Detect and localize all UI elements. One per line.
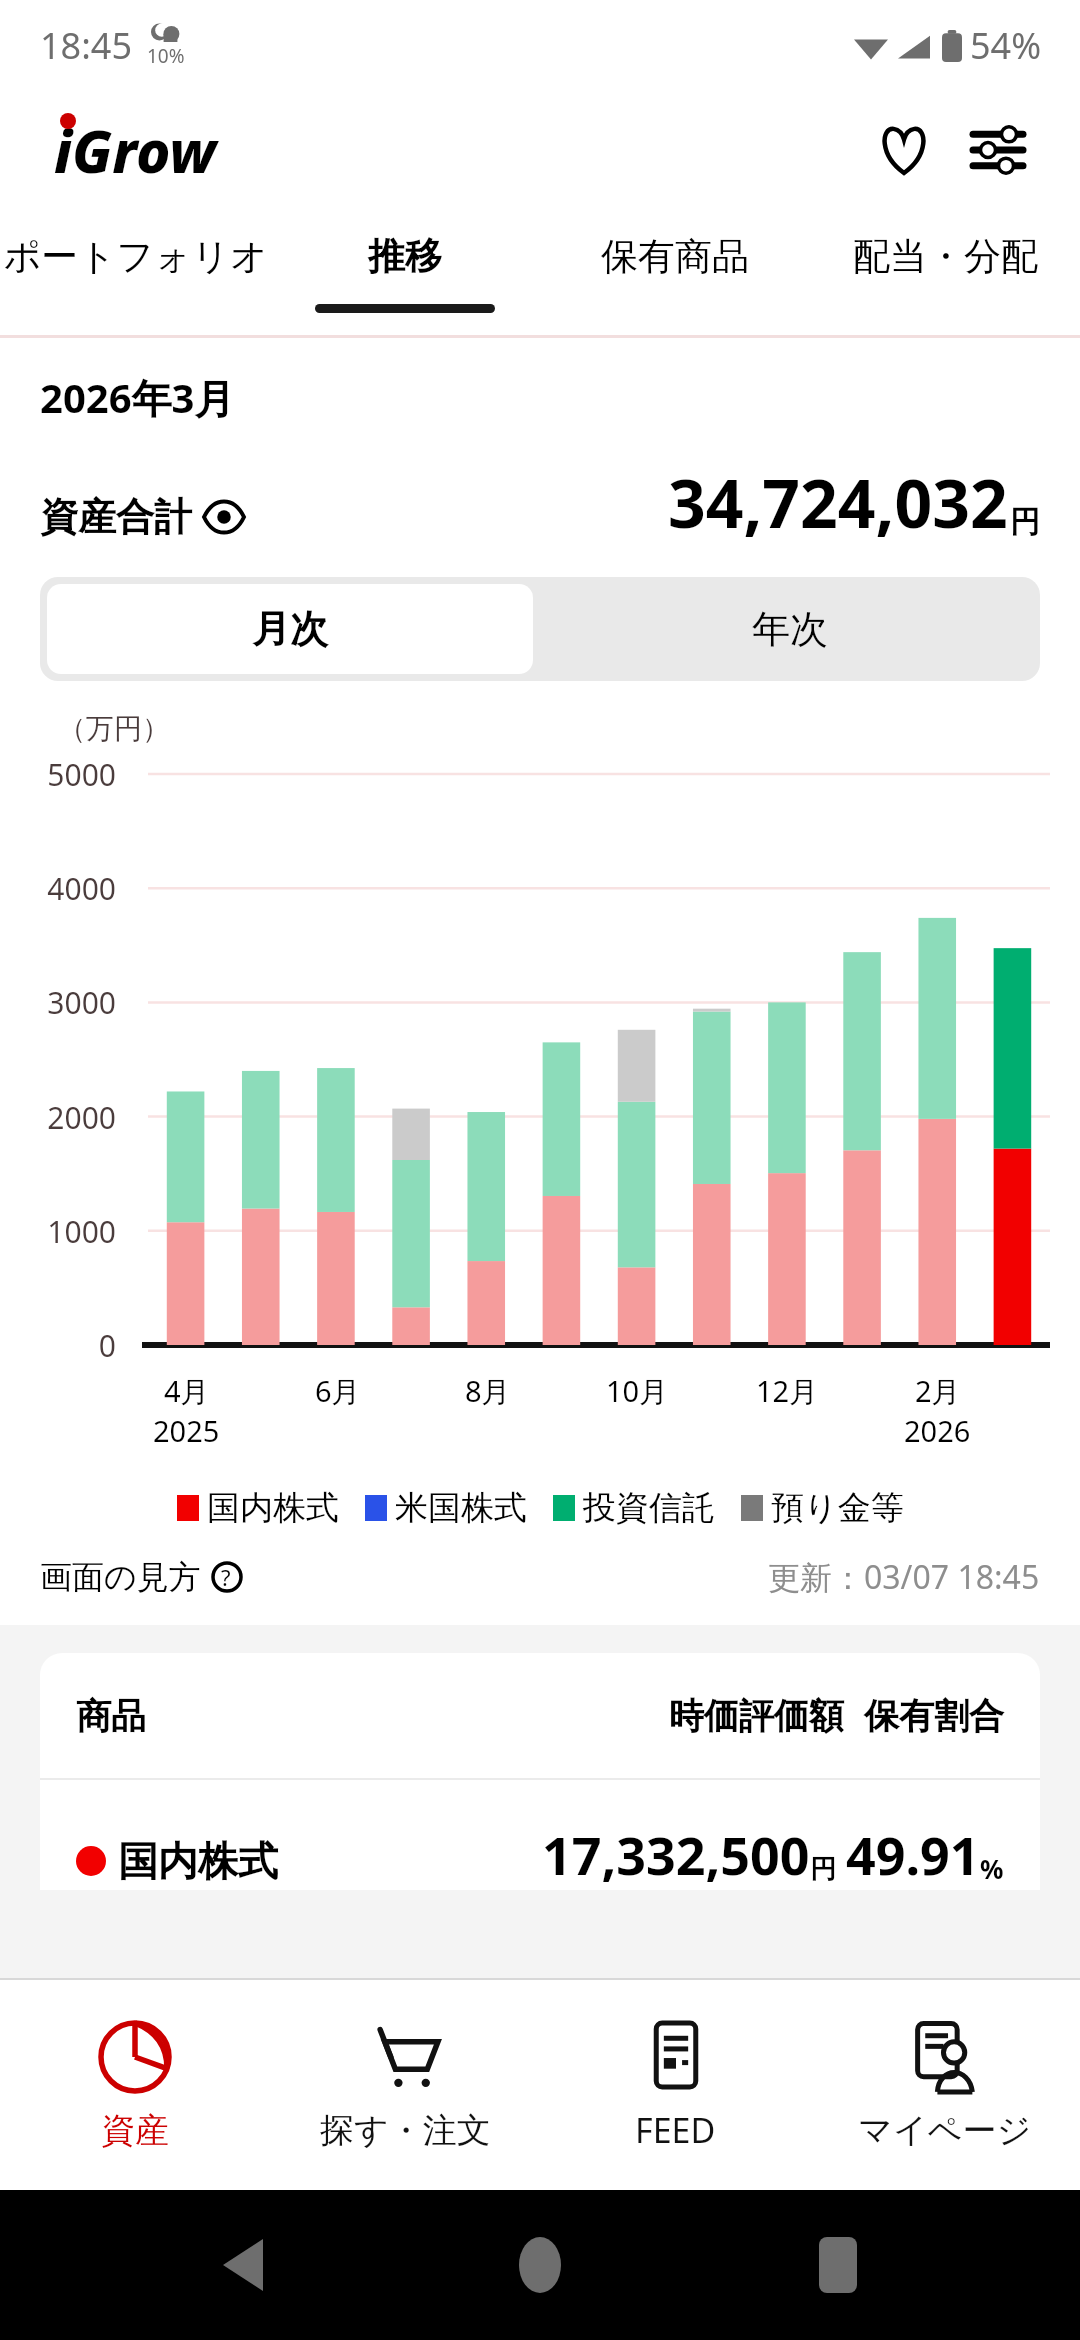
staticText: 10月 [606,1371,669,1411]
staticText: 資産合計 [40,493,192,541]
staticText: 2026年3月 [40,370,235,425]
staticText: 12月 [756,1371,819,1411]
button[interactable]: Recents [783,2210,893,2320]
staticText: 商品 [76,1694,146,1738]
staticText: 推移 [368,233,442,280]
staticText: 18:45 [40,21,133,70]
button[interactable]: Home [485,2210,595,2320]
button[interactable]: 資産 [0,1980,270,2190]
staticText: 円 [810,1853,836,1886]
staticText: 年次 [752,605,828,653]
staticText: マイページ [858,2109,1032,2152]
staticText: 2000 [0,1097,116,1138]
staticText: 国内株式 [118,1836,278,1886]
staticText: 保有商品 [601,233,749,280]
staticText: 5000 [0,754,116,795]
staticText: 49.91 [846,1819,980,1890]
staticText: 34,724,032 [668,457,1008,547]
button[interactable]: 保有商品 [540,210,810,335]
button[interactable]: 資産合計 [40,493,244,547]
staticText: 4000 [0,868,116,909]
staticText: FEED [635,2107,716,2153]
staticText: 米国株式 [395,1487,527,1529]
button[interactable]: 国内株式 [76,1780,1004,1890]
staticText: 預り金等 [771,1487,904,1529]
staticText: iGrow [54,111,216,190]
staticText: 17,332,500 [542,1819,810,1890]
staticText: 8月 [465,1371,511,1411]
button[interactable]: 年次 [540,577,1040,681]
staticText: 探す・注文 [320,2109,491,2152]
button[interactable]: 月次 [47,584,533,674]
staticText: ? [221,1562,231,1592]
button[interactable]: Back [188,2210,298,2320]
staticText: 10% [147,43,185,69]
button[interactable]: Settings [956,108,1040,192]
staticText: 1000 [0,1211,116,1252]
staticText: 画面の見方 [40,1557,201,1597]
staticText: ポートフォリオ [3,233,268,280]
button[interactable]: Favorites [862,108,946,192]
staticText: 投資信託 [583,1487,715,1529]
staticText: 国内株式 [207,1487,339,1529]
staticText: 0 [0,1325,116,1366]
staticText: 2月 [915,1371,961,1411]
staticText: 月次 [252,605,328,653]
staticText: 54% [970,21,1042,70]
staticText: 6月 [315,1371,361,1411]
staticText: % [980,1851,1004,1886]
button[interactable]: 推移 [270,210,540,335]
staticText: （万円） [58,711,170,746]
button[interactable]: 配当・分配 [810,210,1080,335]
button[interactable]: ポートフォリオ [0,210,270,335]
staticText: 2025 [153,1411,220,1450]
staticText: 3000 [0,982,116,1023]
staticText: 保有割合 [864,1694,1004,1738]
staticText: 2026 [904,1411,971,1450]
button[interactable]: 探す・注文 [270,1980,540,2190]
staticText: 4月 [164,1371,210,1411]
staticText: 配当・分配 [853,233,1038,280]
staticText: 時価評価額 [669,1694,844,1738]
staticText: 資産 [101,2109,169,2152]
button[interactable]: 画面の見方 [40,1557,253,1597]
staticText: 円 [1010,503,1040,541]
button[interactable]: マイページ [810,1980,1080,2190]
staticText: 更新：03/07 18:45 [768,1555,1040,1599]
button[interactable]: FEED [540,1980,810,2190]
